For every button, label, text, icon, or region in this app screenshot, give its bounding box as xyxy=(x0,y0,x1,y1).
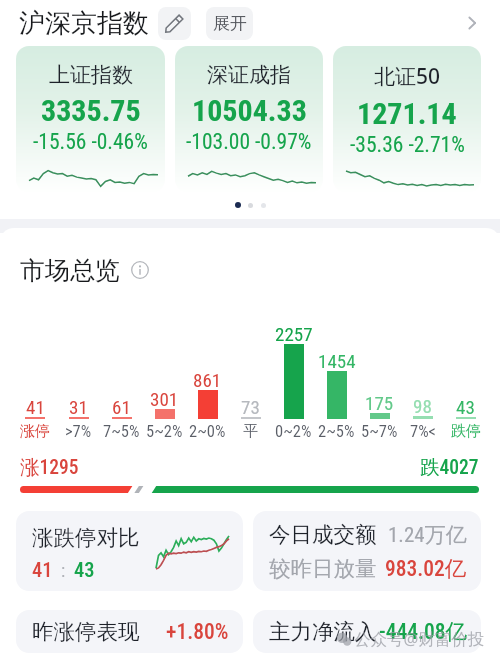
button[interactable]: 昨涨停表现 xyxy=(16,610,243,653)
staticText: 涨1295 xyxy=(20,455,79,480)
staticText: -103.00 -0.97% xyxy=(186,129,312,154)
staticText: 98 xyxy=(413,395,432,417)
staticText: 沪深京指数 xyxy=(19,7,149,40)
staticText: 5~7% xyxy=(361,422,398,441)
staticText: 861 xyxy=(193,369,222,391)
staticText: 2~0% xyxy=(189,422,226,441)
staticText: 主力净流入 xyxy=(269,618,377,645)
staticText: 2257 xyxy=(275,323,313,345)
staticText: : xyxy=(61,560,66,581)
staticText: 983.02亿 xyxy=(385,555,467,582)
staticText: 公众号@财富价投 xyxy=(354,627,485,650)
staticText: -444.08亿 xyxy=(379,618,467,645)
staticText: 跌停 xyxy=(451,422,481,441)
staticText: +1.80% xyxy=(166,619,229,644)
staticText: 7~5% xyxy=(103,422,140,441)
staticText: 73 xyxy=(241,396,260,418)
staticText: 跌4027 xyxy=(420,455,479,480)
staticText: 1454 xyxy=(318,350,356,372)
staticText: 1.24万亿 xyxy=(388,522,467,548)
staticText: 昨涨停表现 xyxy=(32,618,140,645)
button[interactable]: 北证50 xyxy=(333,46,481,192)
staticText: 5~2% xyxy=(146,422,183,441)
button[interactable]: 展开 xyxy=(206,7,253,40)
button[interactable]: 今日成交额 xyxy=(253,511,481,591)
staticText: 北证50 xyxy=(374,62,441,91)
staticText: 301 xyxy=(150,388,179,410)
staticText: 市场总览 xyxy=(20,255,120,286)
staticText: 2~5% xyxy=(318,422,355,441)
button[interactable]: 深证成指 xyxy=(175,46,323,192)
staticText: 0~2% xyxy=(275,422,312,441)
button[interactable]: 编辑 xyxy=(158,7,191,40)
staticText: 今日成交额 xyxy=(269,521,377,548)
button[interactable]: 上证指数 xyxy=(16,46,165,192)
staticText: 175 xyxy=(365,392,394,414)
staticText: 31 xyxy=(69,396,88,418)
staticText: 43 xyxy=(74,558,95,582)
staticText: 43 xyxy=(456,396,475,418)
staticText: 展开 xyxy=(213,13,247,34)
button[interactable]: 主力净流入 xyxy=(253,610,481,653)
staticText: 10504.33 xyxy=(192,93,307,128)
staticText: 深证成指 xyxy=(207,62,291,88)
staticText: 41 xyxy=(26,396,45,418)
staticText: -35.36 -2.71% xyxy=(350,132,465,157)
button[interactable]: 说明 xyxy=(131,261,149,279)
staticText: 41 xyxy=(32,558,53,582)
staticText: 1271.14 xyxy=(357,96,457,131)
staticText: >7% xyxy=(65,422,92,441)
staticText: 7%< xyxy=(410,422,436,441)
staticText: 涨停 xyxy=(20,422,50,441)
staticText: 涨跌停对比 xyxy=(32,524,140,551)
staticText: 上证指数 xyxy=(49,62,133,88)
staticText: 较昨日放量 xyxy=(269,555,377,582)
button[interactable]: 更多 xyxy=(461,12,483,34)
staticText: 61 xyxy=(112,396,131,418)
staticText: -15.56 -0.46% xyxy=(33,129,148,154)
staticText: 平 xyxy=(243,422,258,441)
staticText: 3335.75 xyxy=(41,93,141,128)
button[interactable]: 涨跌停对比 xyxy=(16,511,243,591)
